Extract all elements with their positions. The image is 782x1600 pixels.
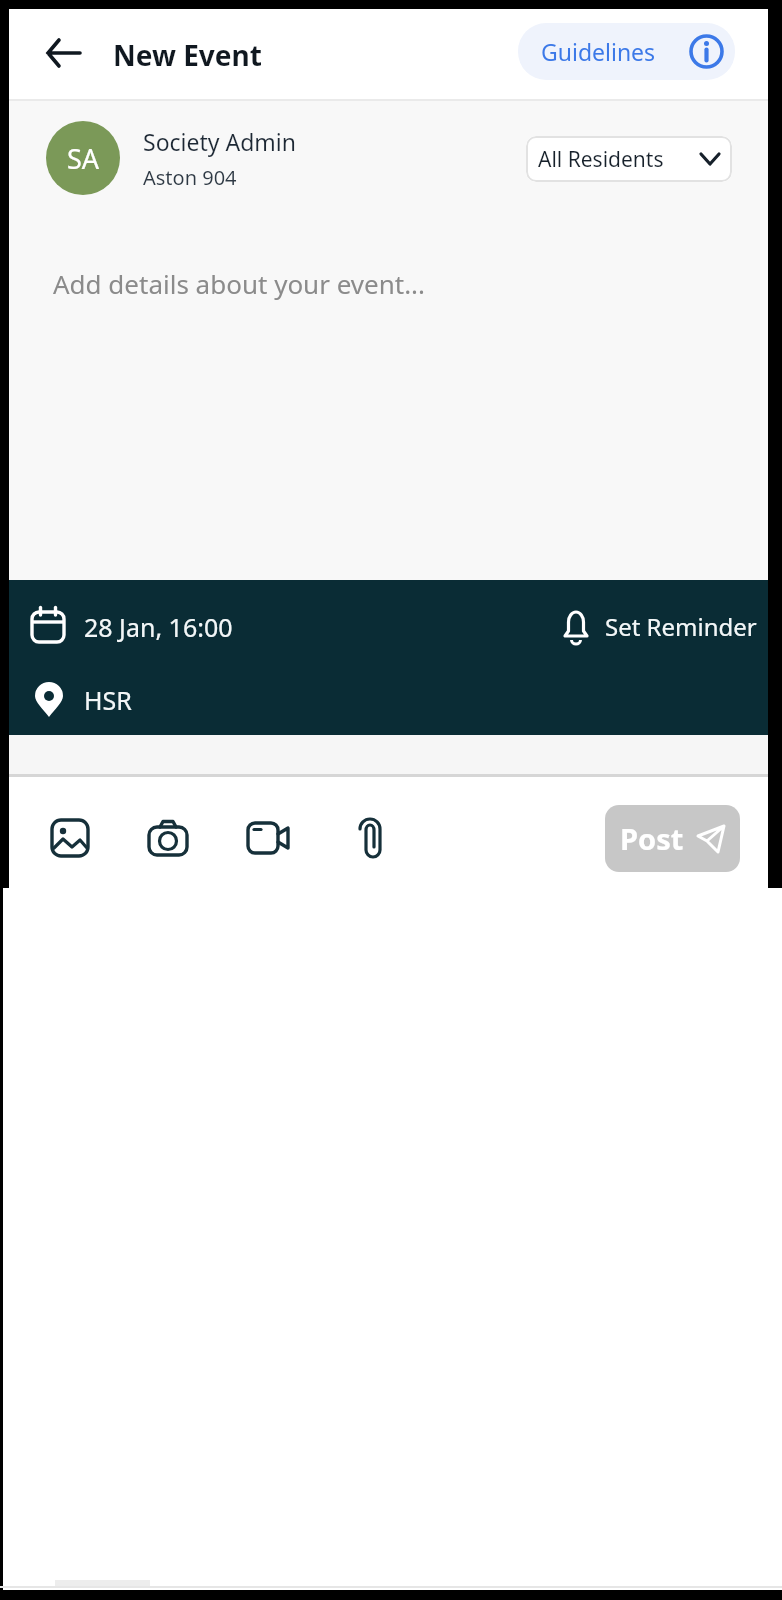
button[interactable]: Post [605,805,740,872]
button[interactable] [344,812,396,864]
button[interactable]: Set Reminder [562,603,757,649]
staticText: Post [620,819,684,858]
staticText: Set Reminder [605,610,757,643]
button[interactable] [142,812,194,864]
staticText: 28 Jan, 16:00 [84,610,233,644]
button[interactable] [242,812,294,864]
button[interactable] [38,28,88,78]
staticText: All Residents [538,145,664,174]
staticText: Guidelines [541,36,656,67]
staticText: New Event [113,36,262,74]
button[interactable] [44,812,96,864]
staticText: HSR [84,683,132,717]
staticText: Aston 904 [143,164,237,191]
staticText: Add details about your event... [53,266,426,301]
staticText: Society Admin [143,126,296,157]
button[interactable]: Guidelines [518,23,735,80]
staticText: SA [67,140,100,177]
button[interactable]: All Residents [526,136,732,182]
